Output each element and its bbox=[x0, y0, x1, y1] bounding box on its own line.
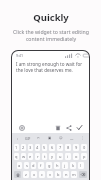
button[interactable]: r bbox=[35, 153, 40, 160]
staticText: u bbox=[59, 154, 62, 159]
button[interactable]: a bbox=[17, 162, 22, 169]
staticText: b bbox=[57, 172, 60, 177]
staticText: ▣ bbox=[48, 136, 52, 140]
button[interactable]: h bbox=[54, 162, 60, 169]
button[interactable]: t bbox=[42, 153, 47, 160]
button[interactable]: 0 bbox=[81, 144, 87, 151]
button[interactable]: Settings bbox=[17, 123, 26, 132]
staticText: v bbox=[49, 172, 52, 177]
button[interactable]: i bbox=[65, 153, 71, 160]
staticText: I am strong enough to wait for the love … bbox=[16, 61, 85, 74]
button[interactable]: 7 bbox=[57, 144, 63, 151]
button[interactable]: l bbox=[78, 162, 84, 169]
staticText: h bbox=[56, 163, 59, 168]
staticText: c bbox=[41, 172, 43, 177]
staticText: y bbox=[51, 154, 54, 159]
button[interactable]: 6 bbox=[49, 144, 55, 151]
staticText: GIF bbox=[25, 136, 31, 141]
staticText: ☺ bbox=[59, 136, 63, 140]
staticText: ✂ bbox=[37, 136, 40, 140]
button[interactable]: I am strong enough to wait for the love … bbox=[16, 61, 85, 74]
staticText: Quickly bbox=[33, 11, 69, 24]
staticText: 2 bbox=[22, 145, 25, 150]
button[interactable]: 1 bbox=[14, 144, 19, 151]
button[interactable]: Done bbox=[75, 123, 84, 132]
button[interactable]: g bbox=[46, 162, 52, 169]
button[interactable]: Keyboard tool 2 bbox=[33, 134, 44, 142]
staticText: r bbox=[37, 154, 39, 159]
button[interactable]: 2 bbox=[21, 144, 26, 151]
staticText: e bbox=[29, 154, 32, 159]
staticText: q bbox=[15, 154, 18, 159]
staticText: ⋮ bbox=[81, 136, 85, 140]
button[interactable]: 4 bbox=[35, 144, 40, 151]
button[interactable]: d bbox=[31, 162, 36, 169]
button[interactable]: 9 bbox=[73, 144, 79, 151]
staticText: 5 bbox=[43, 145, 46, 150]
staticText: 9:41 bbox=[16, 53, 24, 58]
staticText: x bbox=[33, 172, 36, 177]
button[interactable]: e bbox=[28, 153, 33, 160]
button[interactable]: 5 bbox=[42, 144, 47, 151]
button[interactable]: 3 bbox=[28, 144, 33, 151]
staticText: j bbox=[64, 163, 66, 168]
staticText: n bbox=[65, 172, 68, 177]
staticText: o bbox=[75, 154, 78, 159]
button[interactable]: b bbox=[55, 171, 61, 178]
staticText: f bbox=[40, 163, 42, 168]
button[interactable]: Shift bbox=[14, 171, 21, 178]
staticText: 6 bbox=[51, 145, 54, 150]
staticText: — bbox=[70, 136, 74, 141]
staticText: g bbox=[48, 163, 51, 168]
button[interactable]: Keyboard tool 5 bbox=[66, 134, 77, 142]
button[interactable]: y bbox=[49, 153, 55, 160]
button[interactable]: Share bbox=[64, 123, 73, 132]
staticText: 9 bbox=[75, 145, 78, 150]
button[interactable]: Keyboard tool 1 bbox=[23, 134, 33, 142]
button[interactable]: v bbox=[47, 171, 53, 178]
staticText: 7 bbox=[59, 145, 62, 150]
staticText: s bbox=[26, 163, 28, 168]
button[interactable]: z bbox=[23, 171, 29, 178]
staticText: 4 bbox=[36, 145, 39, 150]
button[interactable]: k bbox=[70, 162, 76, 169]
staticText: z bbox=[25, 172, 27, 177]
button[interactable]: f bbox=[38, 162, 44, 169]
staticText: 0 bbox=[83, 145, 86, 150]
button[interactable]: j bbox=[62, 162, 68, 169]
staticText: 8 bbox=[67, 145, 70, 150]
button[interactable]: p bbox=[81, 153, 87, 160]
staticText: w bbox=[22, 154, 26, 159]
staticText: m bbox=[72, 172, 76, 177]
button[interactable]: 8 bbox=[65, 144, 71, 151]
button[interactable]: m bbox=[71, 171, 77, 178]
button[interactable]: Keyboard tool 0 bbox=[13, 134, 23, 142]
button[interactable]: u bbox=[57, 153, 63, 160]
staticText: t bbox=[44, 154, 46, 159]
button[interactable]: x bbox=[31, 171, 37, 178]
staticText: i bbox=[67, 154, 69, 159]
button[interactable]: c bbox=[39, 171, 45, 178]
staticText: a bbox=[18, 163, 21, 168]
staticText: k bbox=[72, 163, 75, 168]
button[interactable]: s bbox=[24, 162, 29, 169]
button[interactable]: w bbox=[21, 153, 26, 160]
button[interactable]: Keyboard tool 4 bbox=[55, 134, 66, 142]
staticText: 3 bbox=[29, 145, 32, 150]
button[interactable]: o bbox=[73, 153, 79, 160]
button[interactable]: Backspace bbox=[79, 171, 87, 178]
staticText: l bbox=[80, 163, 82, 168]
staticText: p bbox=[83, 154, 86, 159]
staticText: ‹ bbox=[17, 136, 19, 141]
staticText: 1 bbox=[15, 145, 18, 150]
button[interactable]: Keyboard tool 3 bbox=[44, 134, 55, 142]
staticText: d bbox=[32, 163, 35, 168]
button[interactable]: Delete bbox=[53, 123, 62, 132]
button[interactable]: n bbox=[63, 171, 69, 178]
staticText: Click the widget to start editing conten… bbox=[13, 28, 89, 42]
button[interactable]: q bbox=[14, 153, 19, 160]
